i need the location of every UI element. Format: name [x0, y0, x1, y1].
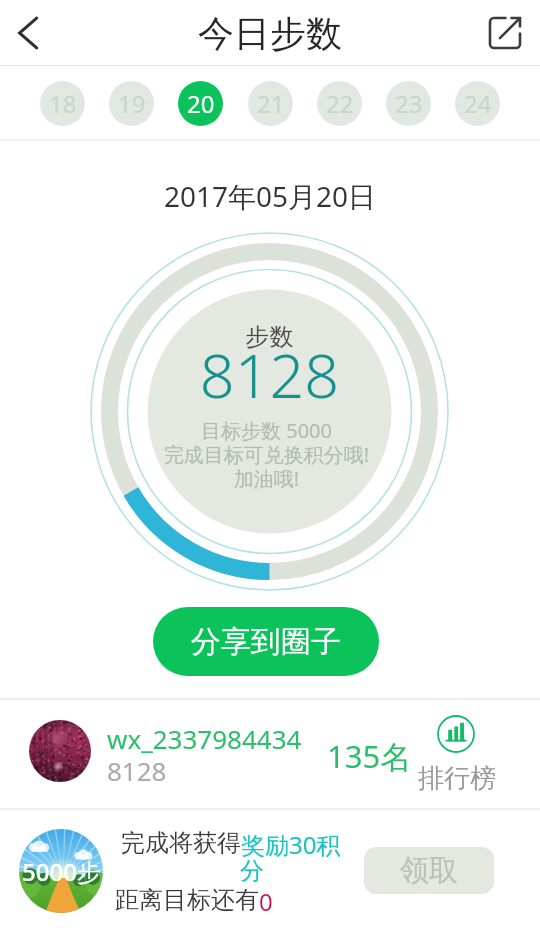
staticText: 21: [257, 87, 285, 120]
staticText: 22: [326, 87, 354, 120]
button[interactable]: Share: [477, 5, 533, 61]
staticText: 排行榜: [418, 762, 496, 795]
staticText: 135名: [327, 735, 412, 777]
button[interactable]: 22: [317, 81, 362, 126]
staticText: 20: [187, 87, 215, 120]
button[interactable]: 23: [386, 81, 431, 126]
staticText: 24: [464, 87, 492, 120]
staticText: 奖励30积: [241, 828, 341, 861]
staticText: 19: [118, 87, 146, 120]
staticText: 分: [240, 856, 264, 886]
staticText: 分享到圈子: [191, 623, 341, 661]
staticText: wx_2337984434: [107, 721, 302, 756]
staticText: 18: [49, 87, 77, 120]
staticText: 2017年05月20日: [0, 177, 540, 215]
button[interactable]: 20: [178, 81, 223, 126]
staticText: 0: [259, 885, 273, 918]
button[interactable]: 19: [109, 81, 154, 126]
staticText: 今日步数: [198, 11, 342, 56]
button[interactable]: 领取: [364, 847, 494, 894]
staticText: 领取: [400, 852, 458, 889]
button[interactable]: Leaderboard: [410, 710, 502, 800]
staticText: 步数: [89, 322, 450, 352]
button[interactable]: wx_2337984434: [0, 700, 540, 809]
staticText: 5000步: [22, 855, 101, 888]
button[interactable]: Back: [0, 5, 56, 61]
button[interactable]: 分享到圈子: [153, 607, 379, 676]
staticText: 8128: [89, 333, 450, 416]
button[interactable]: 21: [248, 81, 293, 126]
button[interactable]: 18: [40, 81, 85, 126]
staticText: 目标步数 5000 完成目标可兑换积分哦! 加油哦!: [86, 417, 447, 492]
staticText: 8128: [107, 753, 167, 788]
staticText: 完成将获得: [121, 828, 241, 858]
staticText: 距离目标还有: [115, 885, 259, 915]
button[interactable]: 24: [455, 81, 500, 126]
staticText: 23: [395, 87, 423, 120]
